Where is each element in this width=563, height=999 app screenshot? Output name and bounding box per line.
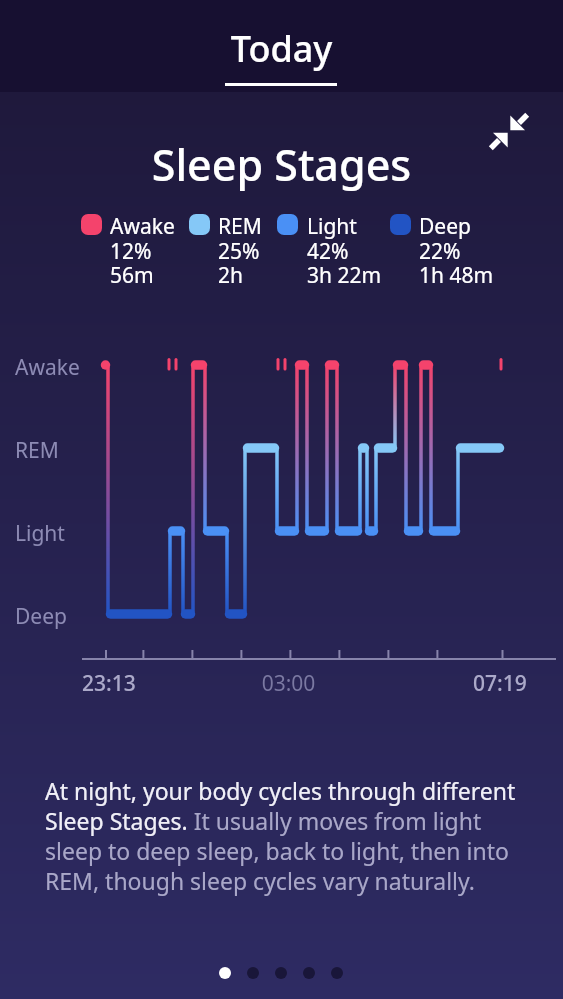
staticText: REM — [15, 436, 59, 465]
button[interactable] — [331, 967, 343, 979]
staticText: 03:00 — [7, 669, 563, 698]
staticText: 07:19 — [473, 669, 527, 698]
staticText: 2h — [218, 261, 243, 290]
staticText: 22% — [419, 237, 461, 266]
button[interactable] — [490, 111, 530, 151]
staticText: 42% — [307, 237, 349, 266]
staticText: 25% — [218, 237, 260, 266]
staticText: Awake — [15, 353, 80, 382]
staticText: Sleep Stages — [0, 135, 563, 194]
staticText: 23:13 — [82, 669, 136, 698]
staticText: Deep — [15, 602, 67, 631]
staticText: Awake — [110, 212, 175, 241]
staticText: Today — [0, 24, 563, 73]
staticText: Deep — [419, 212, 471, 241]
button[interactable] — [247, 967, 259, 979]
button[interactable] — [303, 967, 315, 979]
staticText: 1h 48m — [419, 261, 494, 290]
staticText: sleep to deep sleep, back to light, then… — [45, 835, 509, 866]
staticText: 12% — [110, 237, 152, 266]
staticText: REM, though sleep cycles vary naturally. — [45, 865, 476, 896]
staticText: 3h 22m — [307, 261, 382, 290]
button[interactable] — [219, 967, 231, 979]
staticText: At night, your body cycles through diffe… — [45, 775, 516, 806]
staticText: Light — [307, 212, 357, 241]
staticText: REM — [218, 212, 262, 241]
button[interactable] — [275, 967, 287, 979]
staticText: 56m — [110, 261, 154, 290]
staticText: Light — [15, 519, 65, 548]
staticText: Sleep Stages. It usually moves from ligh… — [45, 805, 482, 836]
